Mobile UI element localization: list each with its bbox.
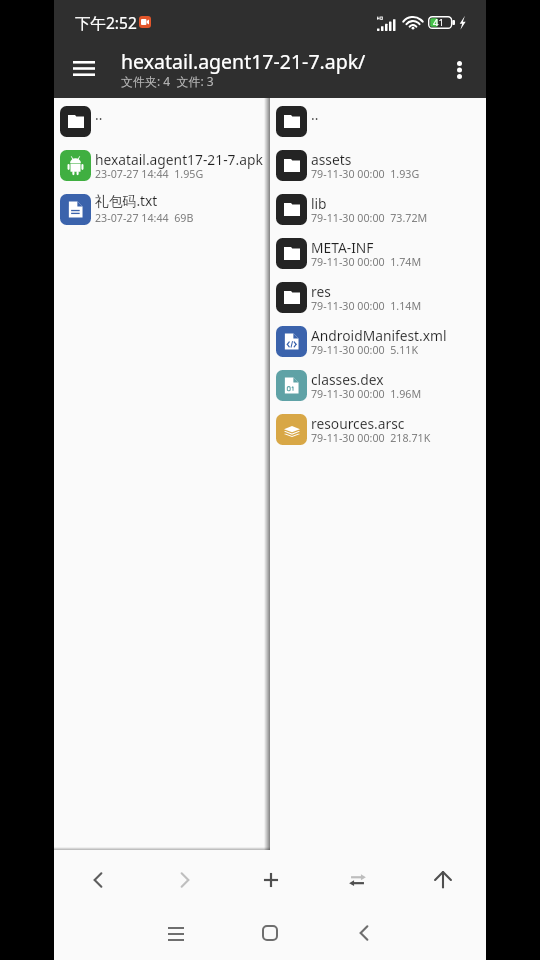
staticText: 礼包码.txt: [95, 191, 158, 210]
staticText: AndroidManifest.xml: [311, 326, 447, 345]
staticText: 79-11-30 00:00 1.93G: [311, 167, 420, 182]
staticText: assets: [311, 150, 352, 169]
staticText: hexatail.agent17-21-7.apk/: [121, 48, 366, 75]
staticText: 23-07-27 14:44 1.95G: [95, 167, 204, 182]
staticText: 79-11-30 00:00 5.11K: [311, 343, 419, 358]
button[interactable]: classes.dex: [270, 363, 486, 407]
staticText: 79-11-30 00:00 1.96M: [311, 387, 422, 402]
button[interactable]: Home: [243, 906, 297, 960]
staticText: ..: [311, 105, 319, 124]
staticText: 下午2:52: [75, 12, 137, 33]
staticText: hexatail.agent17-21-7.apk: [95, 150, 263, 169]
staticText: res: [311, 282, 331, 301]
button[interactable]: lib: [270, 187, 486, 231]
button[interactable]: resources.arsc: [270, 407, 486, 451]
staticText: lib: [311, 194, 327, 213]
button[interactable]: 礼包码.txt: [54, 187, 270, 231]
button[interactable]: hexatail.agent17-21-7.apk: [54, 143, 270, 187]
button[interactable]: More options: [432, 43, 486, 97]
staticText: ..: [95, 105, 103, 124]
staticText: 23-07-27 14:44 69B: [95, 211, 194, 226]
button[interactable]: Back: [337, 906, 391, 960]
staticText: 文件夹: 4 文件: 3: [121, 73, 214, 89]
button[interactable]: Navigate forward: [141, 850, 228, 906]
button[interactable]: Navigate back: [54, 850, 141, 906]
staticText: classes.dex: [311, 370, 384, 389]
button[interactable]: Parent folder: [400, 850, 486, 906]
button[interactable]: Menu: [57, 41, 111, 95]
button[interactable]: New: [228, 850, 314, 906]
button[interactable]: Recent apps: [149, 906, 203, 960]
button[interactable]: AndroidManifest.xml: [270, 319, 486, 363]
staticText: 79-11-30 00:00 1.74M: [311, 255, 422, 270]
button[interactable]: META-INF: [270, 231, 486, 275]
staticText: 79-11-30 00:00 1.14M: [311, 299, 422, 314]
staticText: 41: [433, 16, 444, 29]
staticText: 79-11-30 00:00 73.72M: [311, 211, 428, 226]
button[interactable]: assets: [270, 143, 486, 187]
button[interactable]: ..: [270, 99, 486, 143]
staticText: META-INF: [311, 238, 374, 257]
button[interactable]: ..: [54, 99, 270, 143]
button[interactable]: Transfer: [314, 850, 400, 906]
staticText: resources.arsc: [311, 414, 405, 433]
staticText: 79-11-30 00:00 218.71K: [311, 431, 431, 446]
button[interactable]: res: [270, 275, 486, 319]
